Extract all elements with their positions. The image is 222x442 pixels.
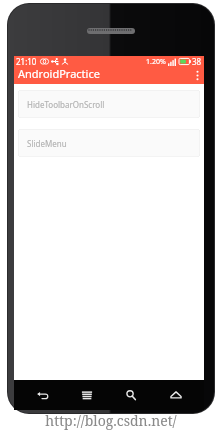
button[interactable]: SlideMenu xyxy=(18,129,200,157)
button[interactable]: Search xyxy=(114,380,148,410)
staticText: SlideMenu xyxy=(27,138,67,149)
button[interactable]: Menu xyxy=(70,380,104,410)
button[interactable]: Back xyxy=(25,380,59,410)
button[interactable]: Home xyxy=(159,380,193,410)
staticText: 38 xyxy=(192,56,202,67)
staticText: 21:10 xyxy=(16,56,37,67)
staticText: HideToolbarOnScroll xyxy=(27,99,105,110)
staticText: http://blog.csdn.net/ xyxy=(0,411,222,430)
button[interactable]: HideToolbarOnScroll xyxy=(18,90,200,118)
button[interactable]: More options xyxy=(190,67,204,83)
staticText: 1.20% xyxy=(146,57,166,67)
staticText: AndroidPractice xyxy=(18,66,100,81)
